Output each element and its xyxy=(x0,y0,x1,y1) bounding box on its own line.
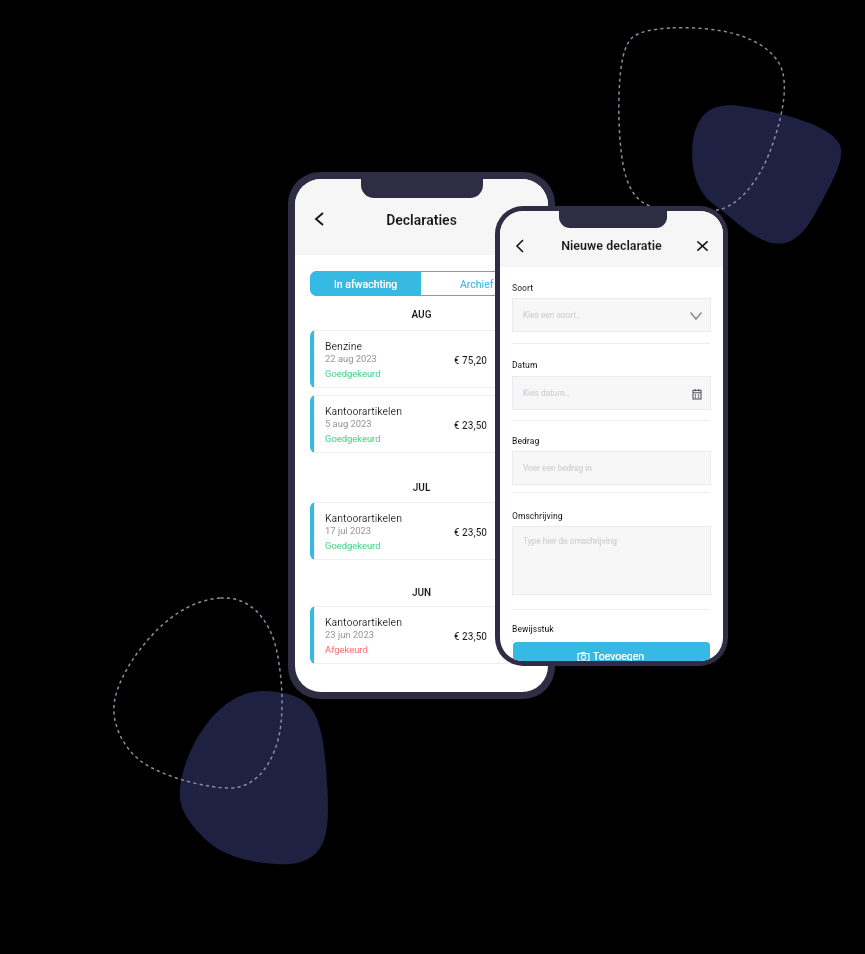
button[interactable]: Kantoorartikelen xyxy=(310,502,533,560)
staticText: Kies datum.. xyxy=(523,388,570,398)
staticText: Kantoorartikelen xyxy=(325,512,402,524)
button[interactable]: Voer een bedrag in xyxy=(512,451,711,485)
staticText: Voer een bedrag in xyxy=(523,463,592,473)
staticText: Archief xyxy=(460,278,494,290)
button[interactable]: In afwachting xyxy=(310,271,421,296)
staticText: Goedgekeurd xyxy=(325,540,381,551)
button[interactable]: Kies een soort.. xyxy=(512,298,711,332)
button[interactable]: Kantoorartikelen xyxy=(310,395,533,453)
staticText: Goedgekeurd xyxy=(325,433,381,444)
staticText: 22 aug 2023 xyxy=(325,353,377,364)
button[interactable]: Close xyxy=(690,233,715,258)
staticText: In afwachting xyxy=(334,278,398,290)
button[interactable]: Kantoorartikelen xyxy=(310,606,533,664)
staticText: € 23,50 xyxy=(310,631,487,643)
staticText: € 23,50 xyxy=(310,527,487,539)
button[interactable]: Back xyxy=(306,206,332,232)
button[interactable]: Kies datum.. xyxy=(512,376,711,410)
staticText: Omschrijving xyxy=(512,511,563,521)
button[interactable]: Back xyxy=(507,233,532,258)
staticText: Bedrag xyxy=(512,436,540,446)
staticText: 5 aug 2023 xyxy=(325,418,372,429)
staticText: Kantoorartikelen xyxy=(325,616,402,628)
button[interactable] xyxy=(500,211,723,267)
staticText: Nieuwe declaratie xyxy=(500,238,723,253)
staticText: JUL xyxy=(295,482,548,494)
staticText: Datum xyxy=(512,360,538,370)
button[interactable]: Type hier de omschrijving xyxy=(512,526,711,595)
staticText: Toevoegen xyxy=(593,650,645,661)
staticText: Benzine xyxy=(325,340,363,352)
staticText: 17 jul 2023 xyxy=(325,525,372,536)
staticText: JUN xyxy=(295,587,548,599)
staticText: Goedgekeurd xyxy=(325,368,381,379)
staticText: AUG xyxy=(295,309,548,321)
button[interactable]: Archief xyxy=(421,271,533,296)
staticText: Soort xyxy=(512,283,534,293)
button[interactable] xyxy=(295,179,548,255)
staticText: € 75,20 xyxy=(310,355,487,367)
staticText: € 23,50 xyxy=(310,420,487,432)
button[interactable]: Toevoegen xyxy=(513,642,710,661)
staticText: Bewijsstuk xyxy=(512,624,554,634)
staticText: Declaraties xyxy=(295,212,548,228)
staticText: Kantoorartikelen xyxy=(325,405,402,417)
button[interactable]: Benzine xyxy=(310,330,533,388)
staticText: Type hier de omschrijving xyxy=(523,536,617,546)
staticText: Kies een soort.. xyxy=(523,310,581,320)
staticText: 23 jun 2023 xyxy=(325,629,374,640)
staticText: Afgekeurd xyxy=(325,644,368,655)
